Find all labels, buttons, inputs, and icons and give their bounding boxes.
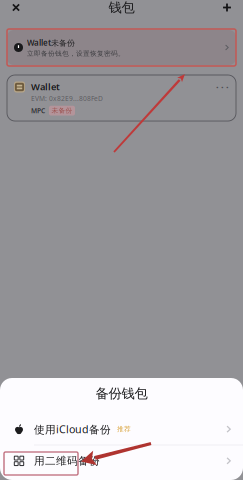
button[interactable]: Wallet未备份 xyxy=(7,30,236,65)
staticText: MPC xyxy=(31,106,45,115)
staticText: 用二维码备份 xyxy=(34,454,100,467)
button[interactable]: Wallet xyxy=(7,75,236,121)
staticText: 未备份 xyxy=(51,106,72,115)
staticText: 钱包 xyxy=(108,0,134,16)
staticText: 备份钱包 xyxy=(95,385,147,402)
button[interactable]: 使用iCloud备份 xyxy=(0,414,243,445)
staticText: 使用iCloud备份 xyxy=(34,422,111,436)
staticText: Wallet xyxy=(31,80,60,93)
button[interactable]: Add wallet xyxy=(215,0,239,15)
staticText: · · · xyxy=(216,80,229,93)
staticText: Wallet未备份 xyxy=(27,37,75,48)
staticText: 推荐 xyxy=(117,425,131,433)
button[interactable]: 用二维码备份 xyxy=(0,445,243,476)
button[interactable]: Close xyxy=(4,0,28,15)
staticText: 立即备份钱包，设置恢复密码。 xyxy=(27,49,125,58)
staticText: EVM: 0x82E9...808FeD xyxy=(31,94,103,103)
